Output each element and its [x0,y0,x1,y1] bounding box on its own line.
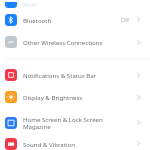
staticText: Off [121,16,129,23]
other: Open [134,15,143,24]
other: Open [134,139,143,148]
button[interactable]: Wi-Fi [0,0,150,8]
other: Open [134,93,143,102]
other: Open [134,118,143,127]
button[interactable]: Bluetooth [0,8,150,31]
button[interactable]: Home Screen & Lock Screen Magazine [0,108,150,137]
button[interactable]: Other Wireless Connections [0,31,150,53]
other: Open [134,71,143,80]
staticText: Wi-Fi [22,0,36,8]
other: Open [134,38,143,47]
staticText: Home Screen & Lock Screen Magazine [23,115,134,131]
staticText: Bluetooth [23,16,121,24]
button[interactable]: Notifications & Status Bar [0,64,150,86]
button[interactable]: Display & Brightness [0,86,150,108]
staticText: Display & Brightness [23,93,134,101]
staticText: Sound & Vibration [23,140,134,148]
staticText: Other Wireless Connections [23,38,134,46]
staticText: Notifications & Status Bar [23,71,134,79]
button[interactable]: Sound & Vibration [0,137,150,150]
